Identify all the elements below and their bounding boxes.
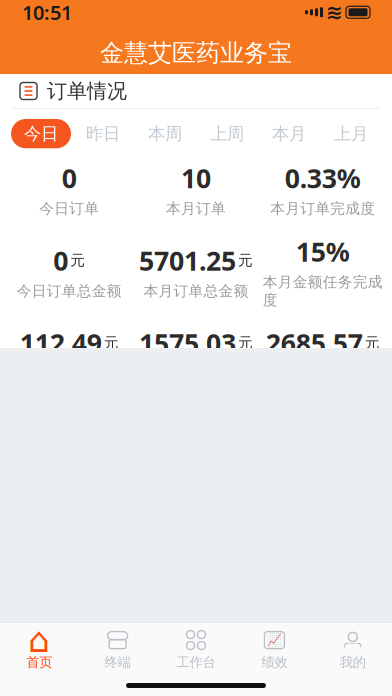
staticText: 元 — [238, 334, 253, 352]
staticText: 元 — [238, 251, 253, 269]
staticText: 本月订单 — [166, 200, 226, 218]
staticText: 本月订单完成度 — [270, 200, 375, 218]
staticText: 📈 — [267, 633, 282, 647]
staticText: 10:51 — [22, 0, 72, 26]
button[interactable]: 工作台 — [157, 623, 235, 670]
staticText: 元 — [104, 334, 119, 352]
staticText: 终端 — [105, 654, 131, 670]
staticText: 1575.03 — [139, 325, 236, 361]
button[interactable]: 上周 — [197, 119, 257, 148]
button[interactable]: 昨日 — [73, 119, 133, 148]
staticText: 0 — [53, 243, 68, 278]
staticText: 工作台 — [176, 654, 215, 670]
staticText: 2685.57 — [266, 325, 363, 361]
staticText: 上周 — [210, 123, 244, 144]
staticText: 0.33% — [285, 160, 361, 196]
button[interactable]: 我的 — [314, 623, 392, 670]
staticText: 本月金额任务完成度 — [263, 273, 383, 309]
button[interactable]: 📈 — [235, 623, 314, 670]
button[interactable]: 上月 — [321, 119, 381, 148]
staticText: 本月订单总金额 — [143, 282, 248, 300]
button[interactable]: ⌂ — [0, 623, 78, 670]
staticText: 10 — [181, 160, 211, 196]
staticText: 15% — [296, 234, 350, 269]
staticText: 首页 — [26, 654, 52, 670]
staticText: 5701.25 — [139, 243, 236, 278]
staticText: 订单情况 — [47, 79, 127, 103]
staticText: 本周 — [148, 123, 182, 144]
staticText: 我的 — [340, 654, 366, 670]
staticText: 1 — [188, 643, 203, 679]
button[interactable]: 本周 — [135, 119, 195, 148]
button[interactable]: 本月 — [259, 119, 319, 148]
staticText: 今日订单总金额 — [17, 282, 122, 300]
staticText: 本月访问客户数 — [143, 609, 248, 627]
staticText: ≋ — [326, 1, 343, 24]
staticText: 0 — [62, 160, 77, 196]
staticText: 112.49 — [20, 325, 102, 361]
staticText: 本月 — [272, 123, 306, 144]
staticText: 绩效 — [261, 654, 287, 670]
staticText: 今日 — [24, 123, 58, 144]
staticText: 元 — [70, 251, 85, 269]
staticText: 今日订单 — [39, 200, 99, 218]
staticText: 金慧艾医药业务宝 — [100, 38, 292, 68]
staticText: 上月 — [334, 123, 368, 144]
staticText: 昨日 — [86, 123, 120, 144]
button[interactable]: 终端 — [78, 623, 157, 670]
staticText: 终端总数 — [39, 609, 99, 627]
staticText: ⌂ — [28, 620, 50, 660]
staticText: 今日新增药店 — [278, 609, 368, 627]
staticText: 元 — [365, 334, 380, 352]
staticText: 认证药店 — [166, 683, 226, 696]
button[interactable]: 今日 — [11, 119, 71, 148]
